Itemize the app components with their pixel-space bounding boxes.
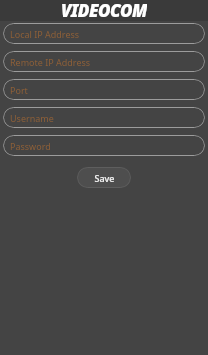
button[interactable]: Save [77, 167, 131, 188]
button[interactable]: Username [3, 107, 205, 128]
staticText: VIDEOCOM [61, 0, 147, 20]
staticText: Remote IP Address [10, 56, 91, 68]
button[interactable]: Password [3, 135, 205, 156]
staticText: Local IP Address [10, 28, 80, 40]
button[interactable]: VIDEOCOM logo [0, 0, 208, 21]
staticText: Password [10, 140, 51, 152]
staticText: Port [10, 84, 28, 96]
button[interactable]: Local IP Address [3, 23, 205, 44]
button[interactable]: Remote IP Address [3, 51, 205, 72]
staticText: Username [10, 112, 54, 124]
staticText: Save [94, 172, 115, 184]
button[interactable]: Port [3, 79, 205, 100]
